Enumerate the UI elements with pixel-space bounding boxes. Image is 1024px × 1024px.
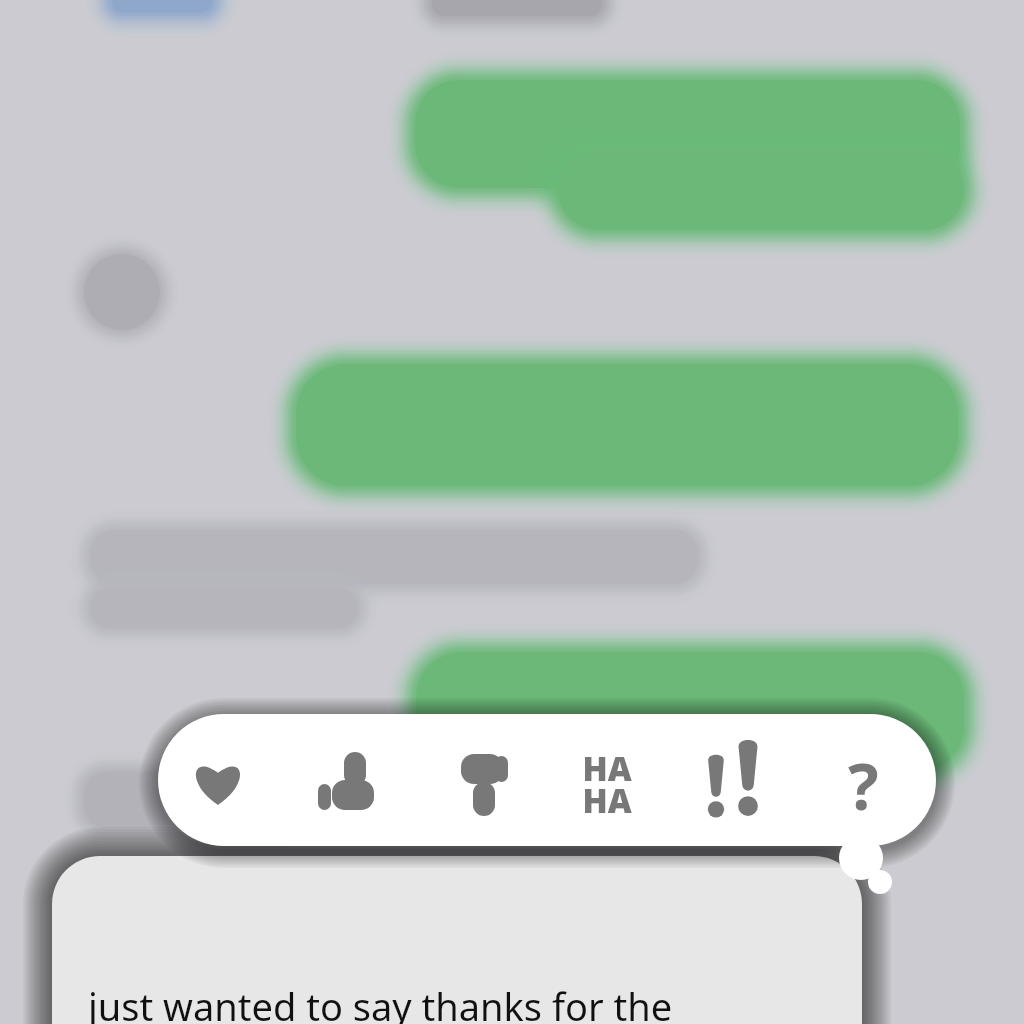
button[interactable]: Love xyxy=(174,718,262,842)
staticText: just wanted to say thanks for the xyxy=(88,980,673,1024)
button[interactable]: Laugh xyxy=(568,746,646,820)
button[interactable]: Emphasize xyxy=(688,718,776,842)
button[interactable]: Question xyxy=(834,742,892,822)
button[interactable]: Like xyxy=(304,718,392,842)
button[interactable]: Dislike xyxy=(433,718,521,842)
staticText: ? xyxy=(848,742,879,822)
staticText: HA HA xyxy=(582,746,632,820)
